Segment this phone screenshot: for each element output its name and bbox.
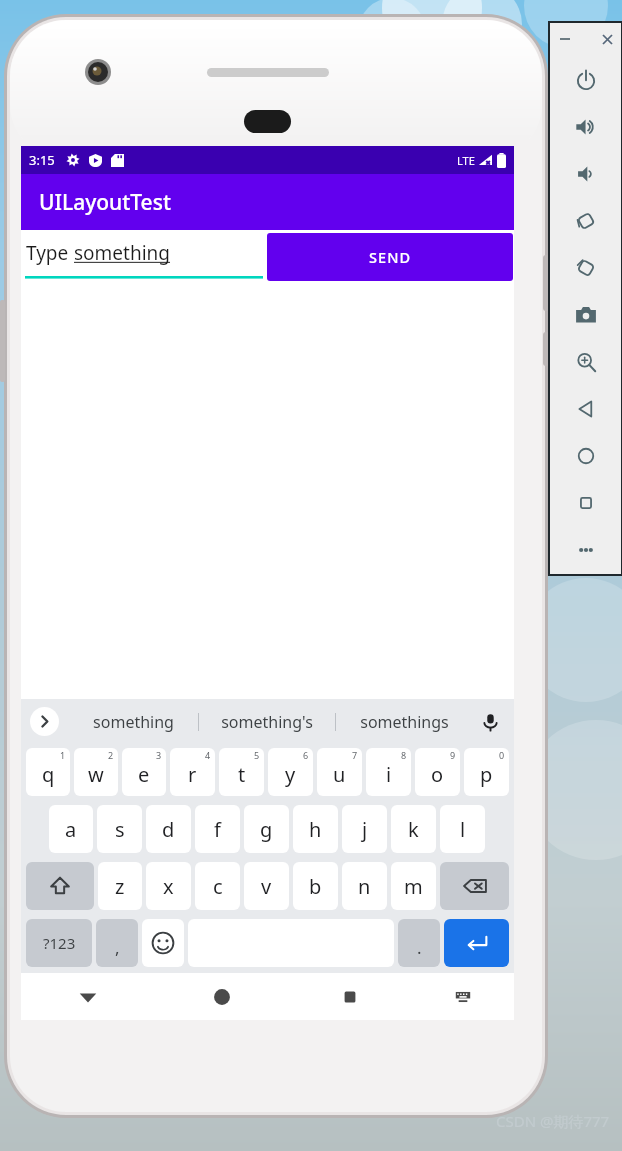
staticText: m: [404, 873, 423, 900]
button[interactable]: something's: [199, 699, 335, 744]
staticText: ?123: [43, 933, 76, 953]
button[interactable]: i: [366, 748, 411, 796]
staticText: 7: [352, 749, 358, 761]
button[interactable]: Home: [155, 973, 289, 1020]
staticText: SEND: [369, 247, 412, 267]
button[interactable]: a: [49, 805, 93, 853]
button[interactable]: u: [317, 748, 362, 796]
button[interactable]: e: [122, 748, 166, 796]
button[interactable]: SEND: [267, 233, 513, 281]
button[interactable]: More: [549, 526, 622, 573]
button[interactable]: h: [293, 805, 338, 853]
button[interactable]: More suggestions: [30, 707, 59, 736]
button[interactable]: z: [98, 862, 142, 910]
button[interactable]: Emoji: [142, 919, 184, 967]
button[interactable]: g: [244, 805, 289, 853]
button[interactable]: b: [293, 862, 338, 910]
staticText: something's: [221, 711, 313, 733]
staticText: o: [431, 761, 444, 788]
button[interactable]: d: [146, 805, 191, 853]
button[interactable]: o: [415, 748, 460, 796]
staticText: 0: [499, 749, 505, 761]
button[interactable]: Close: [597, 29, 617, 49]
button[interactable]: Overview: [549, 479, 622, 526]
staticText: w: [88, 761, 104, 788]
staticText: LTE: [457, 153, 475, 168]
staticText: l: [460, 816, 466, 843]
staticText: v: [261, 873, 272, 900]
staticText: ,: [115, 936, 120, 959]
button[interactable]: Volume up: [549, 103, 622, 150]
staticText: d: [162, 816, 175, 843]
button[interactable]: n: [342, 862, 387, 910]
staticText: 4: [205, 749, 211, 761]
button[interactable]: w: [74, 748, 118, 796]
button[interactable]: .: [398, 919, 440, 967]
button[interactable]: q: [26, 748, 70, 796]
staticText: p: [480, 761, 493, 788]
button[interactable]: Screenshot: [549, 291, 622, 338]
button[interactable]: Backspace: [440, 862, 509, 910]
button[interactable]: m: [391, 862, 436, 910]
button[interactable]: Zoom: [549, 338, 622, 385]
button[interactable]: l: [440, 805, 485, 853]
button[interactable]: Minimize: [555, 29, 575, 49]
button[interactable]: y: [268, 748, 313, 796]
button[interactable]: Type: [21, 230, 267, 284]
staticText: a: [65, 816, 77, 843]
staticText: j: [362, 816, 368, 843]
staticText: u: [333, 761, 346, 788]
staticText: s: [115, 816, 125, 843]
staticText: CSDN @期待777: [496, 1111, 610, 1131]
button[interactable]: Power: [549, 56, 622, 103]
button[interactable]: j: [342, 805, 387, 853]
staticText: 6: [303, 749, 309, 761]
button[interactable]: Recent apps: [289, 973, 411, 1020]
staticText: q: [42, 761, 55, 788]
staticText: h: [309, 816, 322, 843]
button[interactable]: Enter: [444, 919, 509, 967]
staticText: t: [238, 761, 246, 788]
button[interactable]: Shift: [26, 862, 94, 910]
staticText: z: [115, 873, 125, 900]
button[interactable]: r: [170, 748, 215, 796]
staticText: somethings: [360, 711, 449, 733]
button[interactable]: Back: [21, 973, 155, 1020]
button[interactable]: ?123: [26, 919, 92, 967]
staticText: n: [358, 873, 371, 900]
staticText: 1: [60, 749, 66, 761]
staticText: g: [260, 816, 273, 843]
button[interactable]: k: [391, 805, 436, 853]
staticText: 2: [108, 749, 114, 761]
staticText: k: [408, 816, 419, 843]
button[interactable]: somethings: [336, 699, 472, 744]
button[interactable]: c: [195, 862, 240, 910]
button[interactable]: Rotate left: [549, 197, 622, 244]
staticText: x: [163, 873, 174, 900]
button[interactable]: ,: [96, 919, 138, 967]
button[interactable]: Back: [549, 385, 622, 432]
button[interactable]: Voice input: [478, 710, 502, 734]
staticText: y: [285, 761, 296, 788]
button[interactable]: p: [464, 748, 509, 796]
staticText: 8: [401, 749, 407, 761]
button[interactable]: f: [195, 805, 240, 853]
button[interactable]: Home: [549, 432, 622, 479]
staticText: something: [74, 240, 171, 266]
button[interactable]: Volume down: [549, 150, 622, 197]
staticText: UILayoutTest: [39, 188, 171, 217]
button[interactable]: something: [68, 699, 198, 744]
button[interactable]: x: [146, 862, 191, 910]
staticText: e: [138, 761, 150, 788]
button[interactable]: s: [97, 805, 142, 853]
button[interactable]: Hide keyboard: [411, 973, 514, 1020]
staticText: .: [417, 936, 422, 959]
button[interactable]: Rotate right: [549, 244, 622, 291]
button[interactable]: t: [219, 748, 264, 796]
staticText: 3: [156, 749, 162, 761]
staticText: b: [309, 873, 322, 900]
staticText: 9: [450, 749, 456, 761]
button[interactable]: v: [244, 862, 289, 910]
staticText: c: [213, 873, 223, 900]
